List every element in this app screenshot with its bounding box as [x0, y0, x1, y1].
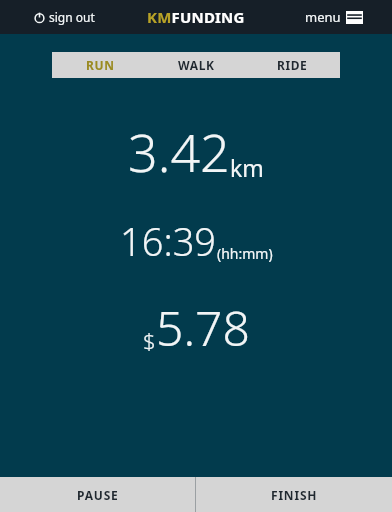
button[interactable]: PAUSE — [0, 477, 195, 512]
staticText: $ — [143, 325, 156, 355]
staticText: menu — [305, 8, 341, 26]
staticText: 16:39 — [120, 215, 217, 267]
button[interactable]: RUN — [52, 52, 148, 78]
staticText: FINISH — [271, 487, 318, 503]
staticText: WALK — [178, 57, 215, 73]
staticText: (hh:mm) — [217, 244, 273, 263]
staticText: km — [230, 152, 264, 183]
button[interactable]: RIDE — [244, 52, 340, 78]
staticText: sign out — [49, 9, 95, 25]
button[interactable]: sign out — [30, 5, 99, 29]
button[interactable]: WALK — [148, 52, 244, 78]
staticText: RUN — [86, 57, 115, 73]
staticText: PAUSE — [77, 487, 119, 503]
staticText: 3.42 — [128, 116, 230, 187]
staticText: KMFUNDING — [147, 7, 245, 27]
staticText: RIDE — [277, 57, 308, 73]
button[interactable]: Menu — [302, 4, 366, 30]
button[interactable]: FINISH — [196, 477, 392, 512]
staticText: 5.78 — [156, 295, 250, 360]
